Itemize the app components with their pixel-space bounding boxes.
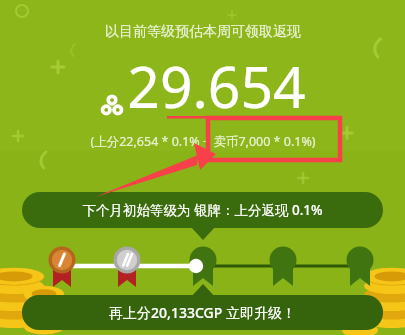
staticText: 下个月初始等级为 银牌：上分返现 0.1% — [82, 201, 323, 219]
staticText: 再上分20,133CGP 立即升级！ — [109, 303, 296, 322]
staticText: (上分22,654 * 0.1% + 卖币7,000 * 0.1%) — [90, 133, 316, 150]
staticText: 29.654 — [127, 47, 306, 125]
button[interactable]: 再上分20,133CGP 立即升级！ — [22, 295, 383, 330]
staticText: 以目前等级预估本周可领取返现 — [105, 23, 301, 41]
button[interactable]: 下个月初始等级为 银牌：上分返现 0.1% — [22, 192, 383, 228]
